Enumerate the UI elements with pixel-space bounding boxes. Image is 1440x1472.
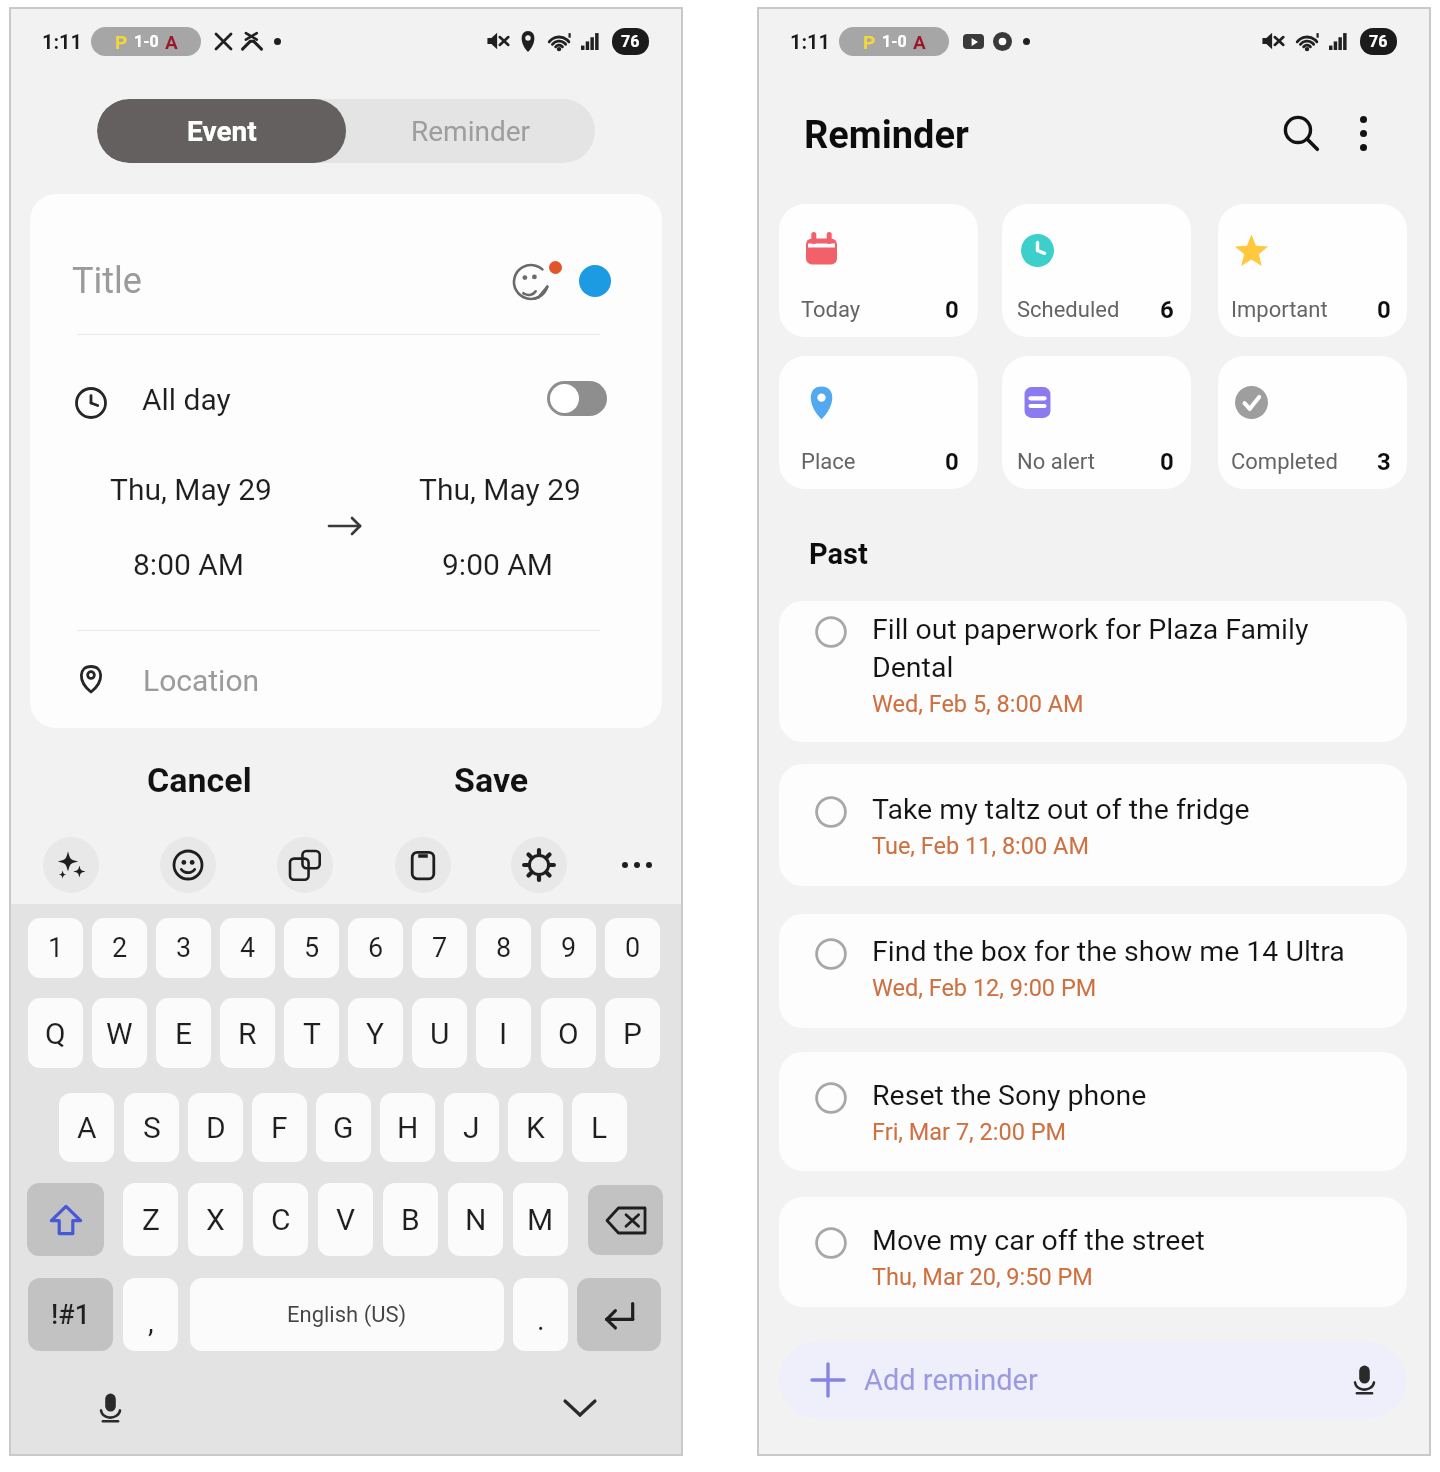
button[interactable]: B [383, 1183, 438, 1256]
button[interactable]: 0 [605, 918, 660, 978]
button[interactable]: 9:00 AM [442, 547, 554, 582]
button[interactable]: Place [779, 356, 978, 489]
staticText: 0 [1377, 296, 1391, 324]
button[interactable]: Reset the Sony phone [779, 1052, 1407, 1171]
button[interactable]: Keyboard tool [277, 837, 333, 893]
button[interactable]: D [188, 1093, 243, 1162]
staticText: H [397, 1110, 419, 1145]
button[interactable]: Search [1275, 107, 1327, 159]
button[interactable]: Backspace [588, 1185, 663, 1255]
button[interactable]: L [572, 1093, 627, 1162]
staticText: Fri, Mar 7, 2:00 PM [872, 1118, 1067, 1146]
button[interactable]: Sticker [512, 263, 550, 301]
button[interactable]: 2 [92, 918, 147, 978]
button[interactable]: Take my taltz out of the fridge [779, 764, 1407, 886]
button[interactable]: T [284, 998, 339, 1068]
button[interactable]: Colour [579, 265, 611, 297]
button[interactable]: 1 [28, 918, 83, 978]
staticText: Today [801, 297, 861, 323]
button[interactable]: !#1 [28, 1278, 113, 1351]
button[interactable]: 7 [412, 918, 467, 978]
staticText: 1 [48, 932, 64, 964]
button[interactable]: Thu, May 29 [110, 472, 272, 507]
button[interactable]: G [316, 1093, 371, 1162]
button[interactable]: Hide keyboard [558, 1386, 602, 1430]
staticText: Z [142, 1202, 160, 1237]
button[interactable]: 5 [284, 918, 339, 978]
button[interactable]: I [476, 998, 531, 1068]
button[interactable]: Z [123, 1183, 178, 1256]
button[interactable]: R [220, 998, 275, 1068]
button[interactable]: Completed [1218, 356, 1407, 489]
button[interactable]: U [412, 998, 467, 1068]
button[interactable]: F [252, 1093, 307, 1162]
staticText: S [143, 1110, 161, 1145]
button[interactable]: 4 [220, 918, 275, 978]
button[interactable]: P [605, 998, 660, 1068]
button[interactable]: Y [348, 998, 403, 1068]
staticText: R [238, 1016, 257, 1051]
button[interactable]: Q [28, 998, 83, 1068]
button[interactable]: A [59, 1093, 114, 1162]
button[interactable]: Today [779, 204, 978, 337]
button[interactable]: Voice typing [88, 1386, 132, 1430]
staticText: Wed, Feb 12, 9:00 PM [872, 974, 1097, 1002]
button[interactable]: All day toggle [547, 381, 607, 416]
staticText: 9 [561, 932, 577, 964]
button[interactable]: Fill out paperwork for Plaza Family Dent… [779, 601, 1407, 742]
button[interactable]: 9 [541, 918, 596, 978]
button[interactable]: Thu, May 29 [419, 472, 581, 507]
button[interactable]: C [253, 1183, 308, 1256]
button[interactable]: Event [97, 99, 346, 163]
button[interactable]: Important [1218, 204, 1407, 337]
button[interactable]: 8:00 AM [133, 547, 245, 582]
button[interactable]: O [541, 998, 596, 1068]
button[interactable]: Enter [577, 1278, 661, 1351]
button[interactable]: . [513, 1278, 568, 1351]
staticText: U [430, 1016, 450, 1051]
button[interactable]: Keyboard tool [160, 837, 216, 893]
button[interactable]: 6 [348, 918, 403, 978]
staticText: Title [72, 260, 142, 302]
button[interactable]: X [188, 1183, 243, 1256]
button[interactable]: Cancel [121, 746, 277, 814]
staticText: 8 [496, 932, 512, 964]
button[interactable]: M [513, 1183, 568, 1256]
staticText: A [913, 31, 926, 53]
button[interactable]: S [124, 1093, 179, 1162]
button[interactable]: K [508, 1093, 563, 1162]
staticText: 76 [621, 32, 640, 51]
staticText: V [336, 1202, 356, 1237]
button[interactable]: , [123, 1278, 178, 1351]
staticText: 3 [176, 932, 192, 964]
staticText: Take my taltz out of the fridge [872, 793, 1250, 826]
staticText: All day [142, 382, 231, 417]
button[interactable]: H [380, 1093, 435, 1162]
staticText: Y [366, 1016, 385, 1051]
button[interactable]: Reminder [346, 99, 595, 163]
staticText: X [206, 1202, 225, 1237]
button[interactable]: Find the box for the show me 14 Ultra [779, 914, 1407, 1028]
button[interactable]: Save [413, 746, 569, 814]
button[interactable]: No alert [1002, 356, 1191, 489]
button[interactable]: Keyboard tool [43, 837, 99, 893]
button[interactable]: English (US) [190, 1278, 504, 1351]
button[interactable]: 8 [476, 918, 531, 978]
button[interactable]: Move my car off the street [779, 1197, 1407, 1307]
button[interactable]: More options [1337, 107, 1389, 159]
button[interactable]: Keyboard tool [395, 837, 451, 893]
button[interactable]: E [156, 998, 211, 1068]
button[interactable]: Location [143, 663, 260, 698]
button[interactable]: 3 [156, 918, 211, 978]
staticText: 0 [945, 448, 959, 476]
staticText: Reset the Sony phone [872, 1079, 1147, 1112]
button[interactable]: N [448, 1183, 503, 1256]
button[interactable]: Keyboard tool [511, 837, 567, 893]
button[interactable]: V [318, 1183, 373, 1256]
button[interactable]: Add reminder [779, 1341, 1407, 1419]
button[interactable]: Keyboard tool [609, 837, 665, 893]
button[interactable]: J [444, 1093, 499, 1162]
button[interactable]: Scheduled [1002, 204, 1191, 337]
button[interactable]: Shift [27, 1183, 104, 1256]
button[interactable]: W [92, 998, 147, 1068]
